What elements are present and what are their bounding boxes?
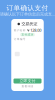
staticText: 交易凭证 <box>21 21 37 26</box>
staticText: 商户名称 <box>14 29 26 32</box>
staticText: 订单确认支付 <box>6 4 48 12</box>
staticText: 请确认以下订单信息后完成支付 <box>0 11 55 17</box>
staticText: 查看详情 <box>21 85 33 88</box>
staticText: ￥128.00 <box>26 28 41 33</box>
button[interactable]: 立即支付 <box>13 78 41 83</box>
staticText: 支付成功 <box>21 33 33 36</box>
staticText: 订单编号 <box>14 37 26 41</box>
button[interactable]: 查看详情 <box>21 83 33 88</box>
staticText: 立即支付 <box>19 78 35 83</box>
